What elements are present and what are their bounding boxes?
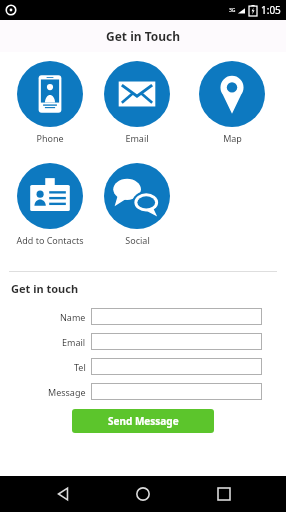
staticText: 3G bbox=[229, 7, 236, 14]
button[interactable]: Home bbox=[125, 476, 161, 512]
button[interactable]: Email field bbox=[91, 333, 262, 350]
button[interactable]: Add to Contacts bbox=[11, 163, 89, 246]
staticText: Name bbox=[60, 311, 86, 323]
button[interactable]: Phone bbox=[11, 61, 89, 144]
staticText: Get in touch bbox=[11, 281, 79, 296]
staticText: Add to Contacts bbox=[16, 234, 84, 246]
staticText: Social bbox=[125, 234, 150, 246]
button[interactable]: Tel field bbox=[91, 358, 262, 375]
staticText: Message bbox=[48, 386, 86, 398]
staticText: Get in Touch bbox=[106, 28, 181, 44]
staticText: Tel bbox=[74, 361, 86, 373]
button[interactable]: Send Message bbox=[72, 409, 214, 433]
button[interactable]: Email bbox=[98, 61, 176, 144]
button[interactable]: Back bbox=[45, 476, 81, 512]
button[interactable]: Map bbox=[193, 61, 271, 144]
button[interactable]: Message field bbox=[91, 383, 262, 400]
staticText: Email bbox=[62, 336, 86, 348]
button[interactable]: Name field bbox=[91, 308, 262, 325]
staticText: Phone bbox=[36, 132, 64, 144]
button[interactable]: Recent apps bbox=[206, 476, 242, 512]
staticText: Email bbox=[125, 132, 149, 144]
staticText: Send Message bbox=[108, 414, 179, 428]
staticText: 1:05 bbox=[261, 3, 281, 17]
button[interactable]: Social bbox=[98, 163, 176, 246]
staticText: Map bbox=[223, 132, 242, 144]
